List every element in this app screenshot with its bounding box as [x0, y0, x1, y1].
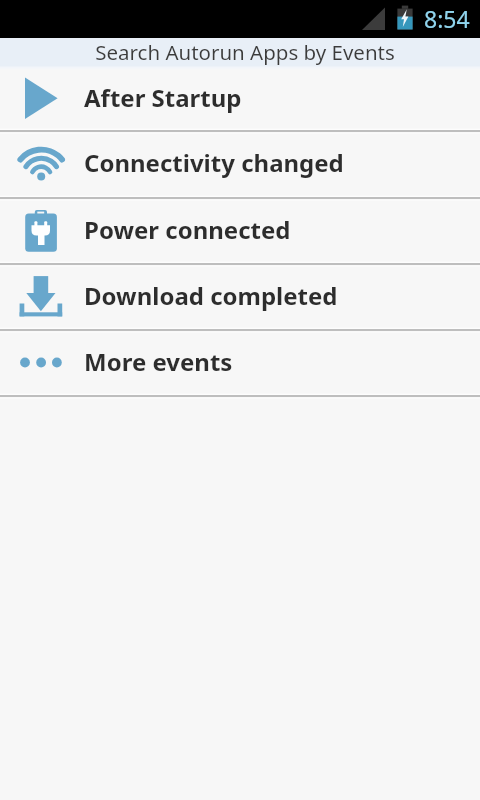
staticText: More events: [84, 345, 233, 378]
button[interactable]: More events: [0, 330, 480, 396]
staticText: Download completed: [84, 279, 338, 312]
button[interactable]: Power connected: [0, 198, 480, 264]
staticText: Search Autorun Apps by Events: [95, 38, 395, 66]
button[interactable]: Connectivity changed: [0, 131, 480, 198]
button[interactable]: After Startup: [0, 68, 480, 131]
staticText: Power connected: [84, 213, 291, 246]
staticText: 8:54: [424, 3, 470, 34]
staticText: After Startup: [84, 81, 242, 114]
staticText: Connectivity changed: [84, 146, 344, 179]
button[interactable]: Download completed: [0, 264, 480, 330]
